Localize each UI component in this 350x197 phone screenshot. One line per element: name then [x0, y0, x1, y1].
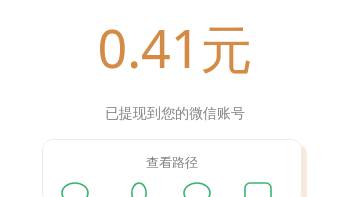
button[interactable]: Step 2 — [126, 183, 152, 197]
button[interactable]: Step 3 — [184, 183, 210, 197]
button[interactable]: Step 1 — [62, 183, 88, 197]
button[interactable]: 查看路径 — [42, 139, 302, 197]
staticText: 0.41元 — [97, 12, 253, 83]
staticText: 查看路径 — [146, 154, 198, 170]
button[interactable]: Step 4 — [245, 183, 271, 197]
staticText: 已提现到您的微信账号 — [105, 105, 245, 123]
